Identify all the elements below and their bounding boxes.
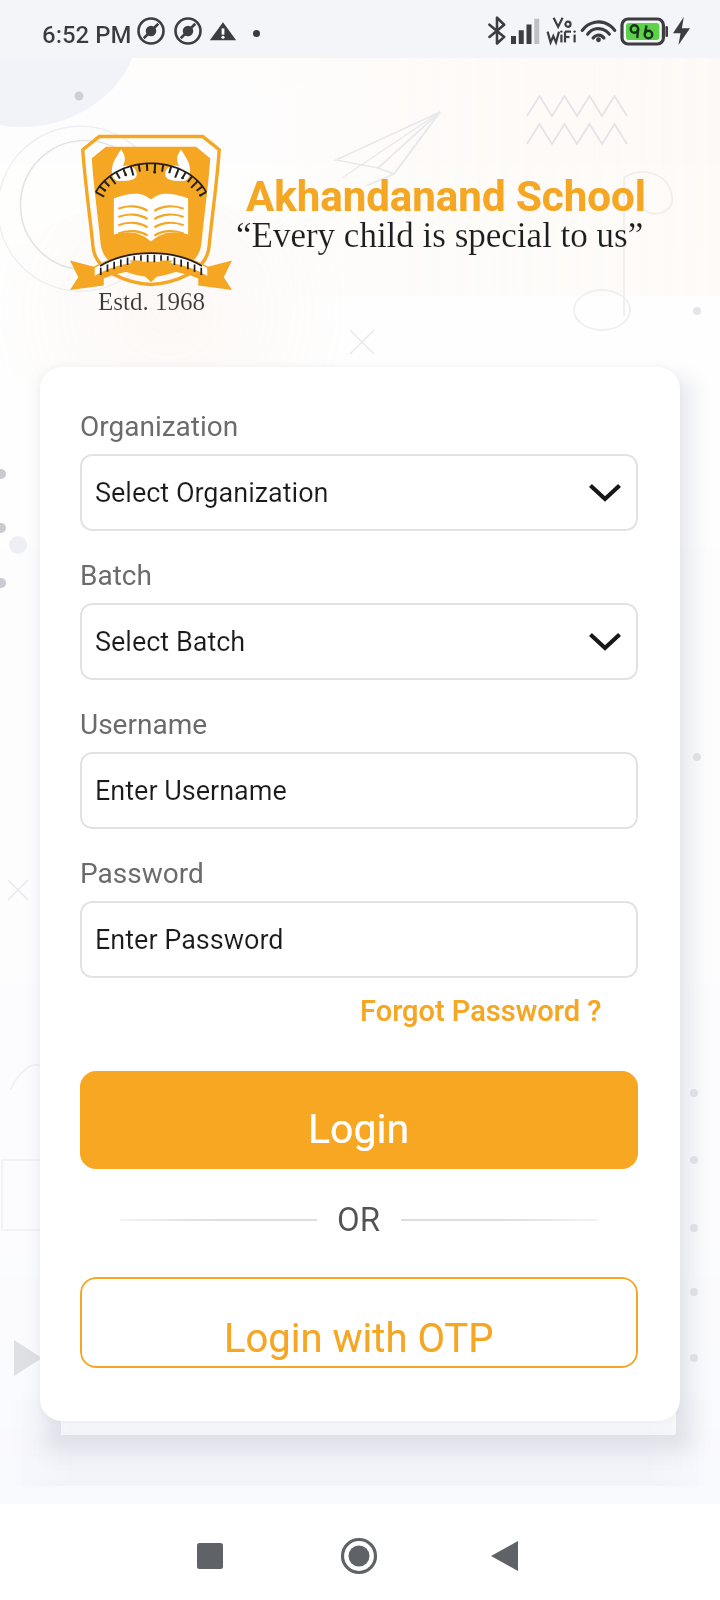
staticText: Login with OTP [224,1315,494,1362]
staticText: Akhandanand School [246,172,646,221]
button[interactable]: Enter Username [80,752,638,829]
button[interactable]: Home [317,1514,401,1598]
staticText: Organization [80,410,239,443]
button[interactable]: Enter Password [80,901,638,978]
button[interactable]: Login [80,1071,638,1169]
staticText: Select Batch [95,626,246,658]
button[interactable]: Forgot Password ? [350,992,638,1030]
button[interactable]: Recent apps [168,1514,252,1598]
staticText: Password [80,857,204,890]
staticText: Enter Password [95,924,284,956]
staticText: Login [308,1105,410,1153]
staticText: Estd. 1968 [98,288,205,316]
button[interactable]: Login with OTP [80,1277,638,1368]
staticText: Enter Username [95,775,287,807]
staticText: “Every child is special to us” [236,216,644,255]
staticText: 6:52 PM [42,21,132,49]
staticText: OR [337,1200,381,1239]
button[interactable]: Back [462,1514,546,1598]
staticText: Forgot Password ? [360,994,602,1028]
staticText: Batch [80,559,152,592]
staticText: Select Organization [95,477,329,509]
button[interactable]: Select Organization [80,454,638,531]
staticText: Username [80,708,208,741]
button[interactable]: Select Batch [80,603,638,680]
